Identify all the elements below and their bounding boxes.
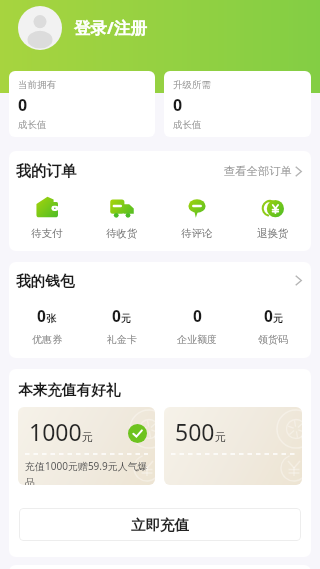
button[interactable]: 查看全部订单 (224, 160, 302, 182)
button[interactable]: 待评论 (159, 191, 235, 240)
staticText: 元 (121, 312, 131, 325)
button[interactable]: 立即充值 (19, 508, 301, 541)
staticText: 0 (193, 305, 202, 326)
staticText: 充值1000元赠59.9元人气爆品 (25, 459, 148, 485)
button[interactable]: 待收货 (84, 191, 159, 240)
staticText: 当前拥有 (18, 79, 56, 91)
staticText: 企业额度 (177, 333, 217, 346)
staticText: 张 (46, 312, 56, 325)
staticText: 成长值 (18, 119, 47, 131)
button[interactable]: 0 (235, 299, 311, 346)
button[interactable]: 500 (164, 407, 302, 485)
staticText: 0 (112, 305, 121, 326)
button[interactable]: 0 (9, 299, 84, 346)
staticText: 我的钱包 (16, 272, 75, 290)
staticText: 我的订单 (16, 162, 76, 181)
staticText: 0 (37, 305, 46, 326)
staticText: 领货码 (258, 333, 288, 346)
staticText: 优惠券 (32, 333, 62, 346)
button[interactable]: 1000 (18, 407, 155, 485)
staticText: 查看全部订单 (224, 164, 292, 178)
staticText: 立即充值 (131, 516, 189, 534)
staticText: 待收货 (106, 227, 138, 240)
button[interactable]: 升级所需 (164, 71, 311, 137)
staticText: 元 (273, 312, 283, 325)
staticText: 500 (175, 416, 215, 447)
button[interactable]: 当前拥有 (9, 71, 155, 137)
staticText: 退换货 (257, 227, 289, 240)
staticText: 元 (82, 430, 93, 444)
staticText: 1000 (29, 416, 82, 447)
staticText: 0 (173, 94, 183, 116)
staticText: 待支付 (31, 227, 63, 240)
staticText: 待评论 (181, 227, 213, 240)
staticText: 0 (264, 305, 273, 326)
button[interactable]: 我的钱包 (9, 262, 311, 358)
button[interactable]: 待支付 (9, 191, 84, 240)
button[interactable]: 退换货 (235, 191, 311, 240)
button[interactable]: 0 (84, 299, 159, 346)
button[interactable]: 0 (159, 299, 235, 346)
staticText: 升级所需 (173, 79, 211, 91)
button[interactable]: 登录/注册 (18, 5, 147, 50)
staticText: 元 (215, 430, 226, 444)
staticText: 0 (18, 94, 28, 116)
staticText: 礼金卡 (107, 333, 137, 346)
staticText: 本来充值有好礼 (18, 381, 121, 399)
staticText: 登录/注册 (74, 16, 147, 39)
staticText: 成长值 (173, 119, 202, 131)
